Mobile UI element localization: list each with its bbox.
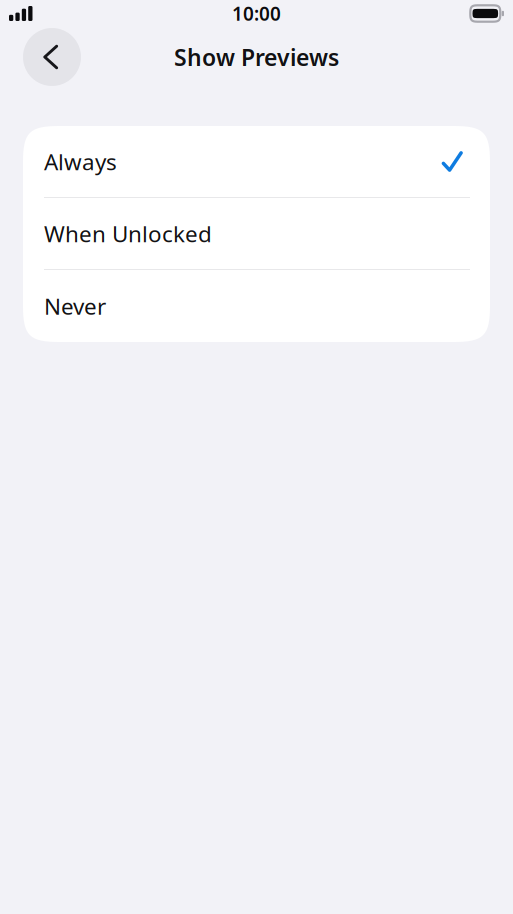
staticText: 10:00: [232, 1, 281, 26]
staticText: Never: [44, 291, 106, 321]
button[interactable]: When Unlocked: [23, 198, 490, 270]
button[interactable]: Always: [23, 126, 490, 198]
staticText: Show Previews: [174, 41, 339, 73]
staticText: Always: [44, 146, 117, 177]
button[interactable]: Back: [23, 28, 81, 86]
staticText: When Unlocked: [44, 218, 212, 249]
button[interactable]: Never: [23, 270, 490, 342]
